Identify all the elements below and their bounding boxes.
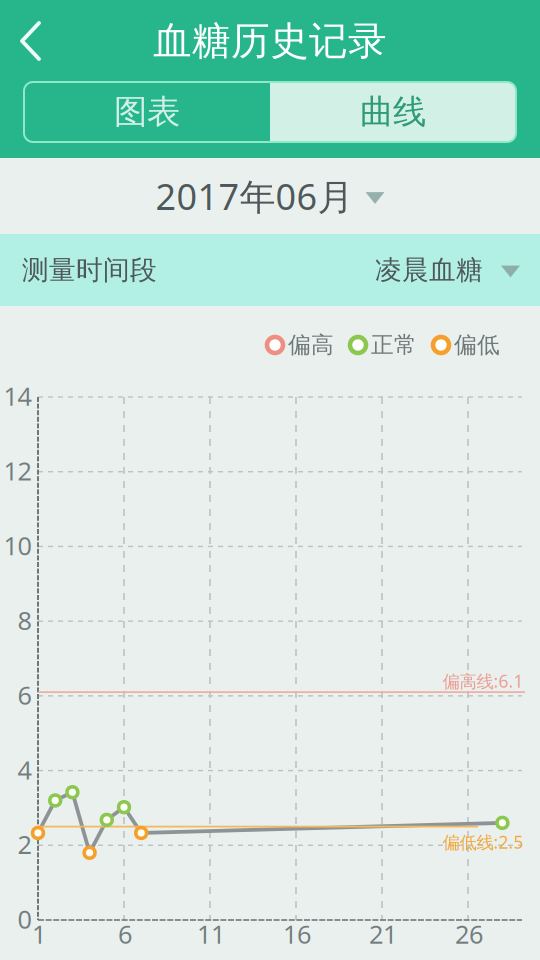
staticText: 偏高线:6.1 [442,669,523,692]
button[interactable]: 2017年06月 [0,158,540,234]
staticText: 2017年06月 [155,172,353,220]
staticText: 凌晨血糖 [375,254,483,286]
staticText: 偏低 [454,331,500,359]
staticText: 12 [3,454,31,487]
button[interactable]: 图表 [24,82,270,142]
staticText: 测量时间段 [22,254,157,286]
staticText: 正常 [371,331,417,359]
staticText: 8 [17,603,31,637]
staticText: 10 [3,529,31,562]
staticText: 6 [118,917,132,951]
staticText: 偏低线:2.5 [442,830,523,853]
staticText: 6 [17,678,31,712]
button[interactable]: Back [0,9,58,73]
staticText: 14 [3,379,31,413]
staticText: 26 [455,917,483,951]
staticText: 11 [197,917,225,951]
staticText: 曲线 [360,91,426,132]
button[interactable]: 测量时间段 [0,234,540,306]
staticText: 16 [283,917,311,951]
staticText: 21 [369,917,397,951]
staticText: 1 [32,917,46,951]
staticText: 图表 [114,91,180,132]
staticText: 血糖历史记录 [153,17,387,65]
staticText: 2 [17,827,31,861]
button[interactable]: 曲线 [270,82,516,142]
staticText: 偏高 [288,331,334,359]
staticText: 0 [17,902,31,936]
staticText: 4 [17,753,31,786]
